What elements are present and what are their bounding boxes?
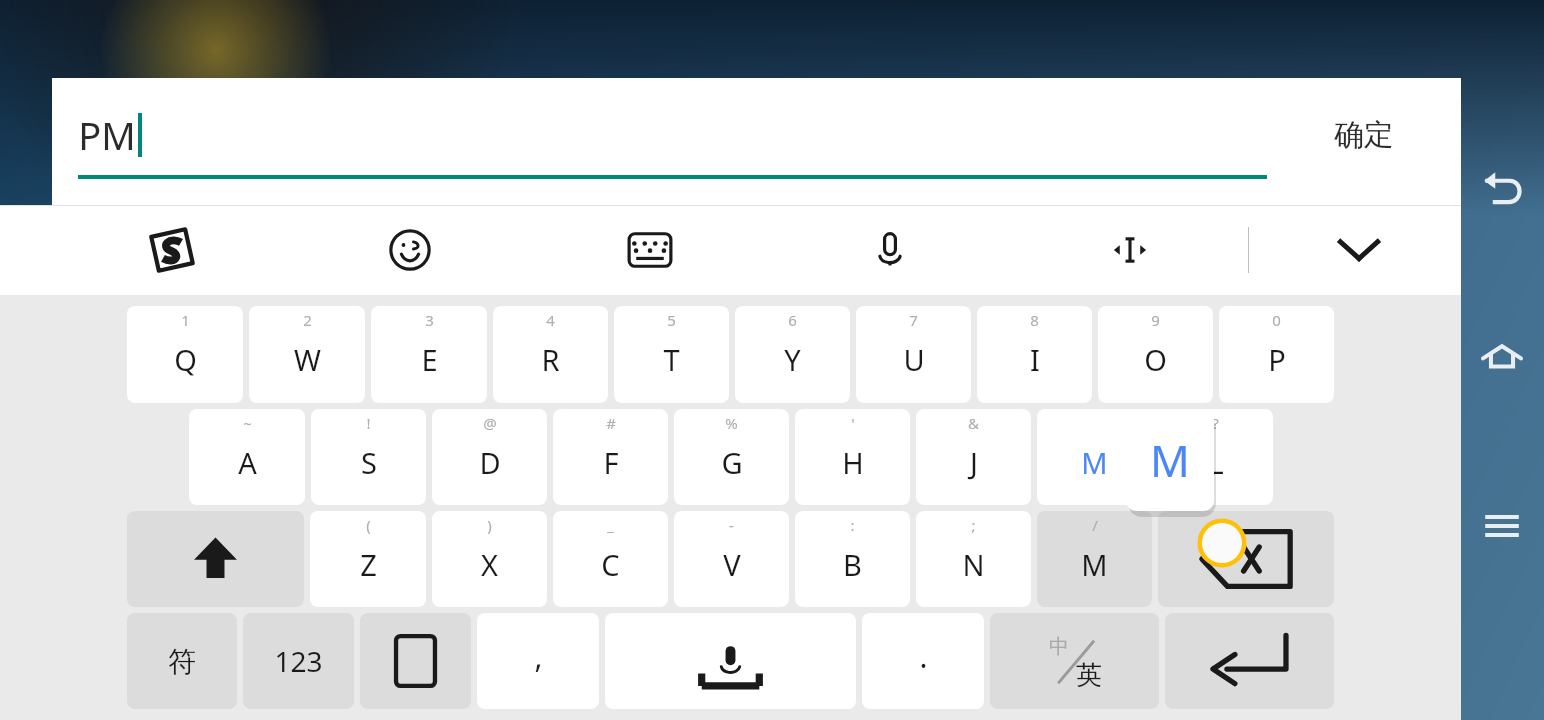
- staticText: .: [919, 636, 928, 677]
- staticText: 5: [667, 310, 676, 330]
- button[interactable]: &: [916, 409, 1031, 505]
- staticText: Z: [360, 545, 377, 584]
- button[interactable]: Sogou input settings: [120, 205, 224, 295]
- staticText: O: [1144, 340, 1167, 379]
- button[interactable]: !: [311, 409, 426, 505]
- staticText: 中: [1049, 634, 1069, 659]
- staticText: 6: [788, 310, 797, 330]
- button[interactable]: 确定: [1267, 78, 1461, 205]
- button[interactable]: #: [553, 409, 668, 505]
- button[interactable]: @: [432, 409, 547, 505]
- staticText: V: [723, 545, 741, 584]
- staticText: -: [729, 515, 734, 535]
- staticText: W: [294, 340, 321, 379]
- staticText: E: [421, 340, 438, 379]
- button[interactable]: 8: [977, 306, 1092, 403]
- button[interactable]: ,: [477, 613, 599, 709]
- staticText: Y: [784, 340, 801, 379]
- button[interactable]: 9: [1098, 306, 1213, 403]
- staticText: 确定: [1334, 116, 1394, 154]
- staticText: ;: [971, 515, 976, 535]
- staticText: C: [601, 545, 620, 584]
- staticText: 7: [909, 310, 918, 330]
- button[interactable]: 7: [856, 306, 971, 403]
- staticText: 2: [303, 310, 312, 330]
- staticText: M: [1150, 430, 1190, 490]
- staticText: PM: [78, 109, 136, 161]
- staticText: 8: [1030, 310, 1039, 330]
- button[interactable]: -: [674, 511, 789, 607]
- staticText: ~: [243, 413, 252, 433]
- staticText: 英: [1076, 659, 1102, 692]
- staticText: ): [487, 515, 492, 535]
- button[interactable]: %: [674, 409, 789, 505]
- staticText: ?: [1212, 413, 1219, 433]
- staticText: &: [968, 413, 979, 433]
- staticText: 1: [181, 310, 190, 330]
- staticText: X: [481, 545, 498, 584]
- staticText: #: [606, 413, 616, 433]
- staticText: 123: [274, 642, 323, 680]
- staticText: F: [603, 443, 619, 482]
- staticText: T: [663, 340, 680, 379]
- button[interactable]: Voice input: [838, 205, 942, 295]
- button[interactable]: ;: [916, 511, 1031, 607]
- button[interactable]: 3: [371, 306, 487, 403]
- button[interactable]: Capitalization: [360, 613, 471, 709]
- button[interactable]: Home: [1460, 316, 1544, 400]
- staticText: 符: [168, 644, 196, 679]
- button[interactable]: .: [862, 613, 984, 709]
- staticText: J: [970, 443, 978, 482]
- button[interactable]: ): [432, 511, 547, 607]
- button[interactable]: Recent apps: [1460, 484, 1544, 568]
- staticText: 3: [425, 310, 434, 330]
- staticText: R: [541, 340, 560, 379]
- staticText: M: [1081, 443, 1108, 482]
- staticText: 4: [546, 310, 555, 330]
- button[interactable]: 5: [614, 306, 729, 403]
- button[interactable]: Delete: [1158, 511, 1334, 607]
- staticText: :: [850, 515, 855, 535]
- staticText: N: [962, 545, 985, 584]
- button[interactable]: ': [795, 409, 910, 505]
- button[interactable]: 符: [127, 613, 237, 709]
- button[interactable]: 6: [735, 306, 850, 403]
- button[interactable]: ~: [189, 409, 305, 505]
- button[interactable]: Emoji: [358, 205, 462, 295]
- button[interactable]: 中: [990, 613, 1159, 709]
- staticText: 9: [1151, 310, 1160, 330]
- button[interactable]: 2: [249, 306, 365, 403]
- staticText: M: [1081, 545, 1108, 584]
- button[interactable]: Back: [1460, 148, 1544, 232]
- button[interactable]: ?: [1158, 409, 1273, 505]
- button[interactable]: Enter: [1165, 613, 1334, 709]
- button[interactable]: _: [553, 511, 668, 607]
- staticText: G: [721, 443, 743, 482]
- button[interactable]: Switch keyboard layout: [598, 205, 702, 295]
- button[interactable]: :: [795, 511, 910, 607]
- button[interactable]: Hide keyboard: [1307, 205, 1411, 295]
- staticText: D: [479, 443, 501, 482]
- staticText: @: [483, 413, 497, 433]
- button[interactable]: 4: [493, 306, 608, 403]
- button[interactable]: Space: [605, 613, 856, 709]
- staticText: 0: [1272, 310, 1281, 330]
- staticText: ': [851, 413, 855, 433]
- button[interactable]: 123: [243, 613, 354, 709]
- button[interactable]: 0: [1219, 306, 1334, 403]
- button[interactable]: /: [1037, 511, 1152, 607]
- staticText: H: [842, 443, 864, 482]
- button[interactable]: (: [310, 511, 426, 607]
- button[interactable]: M: [1037, 409, 1152, 505]
- staticText: ,: [534, 636, 543, 677]
- staticText: B: [843, 545, 862, 584]
- button[interactable]: Move cursor: [1078, 205, 1182, 295]
- staticText: Q: [174, 340, 197, 379]
- staticText: L: [1208, 443, 1224, 482]
- button[interactable]: 1: [127, 306, 243, 403]
- staticText: A: [238, 443, 257, 482]
- button[interactable]: Shift: [127, 511, 304, 607]
- staticText: (: [366, 515, 371, 535]
- staticText: S: [361, 443, 377, 482]
- staticText: I: [1030, 340, 1040, 379]
